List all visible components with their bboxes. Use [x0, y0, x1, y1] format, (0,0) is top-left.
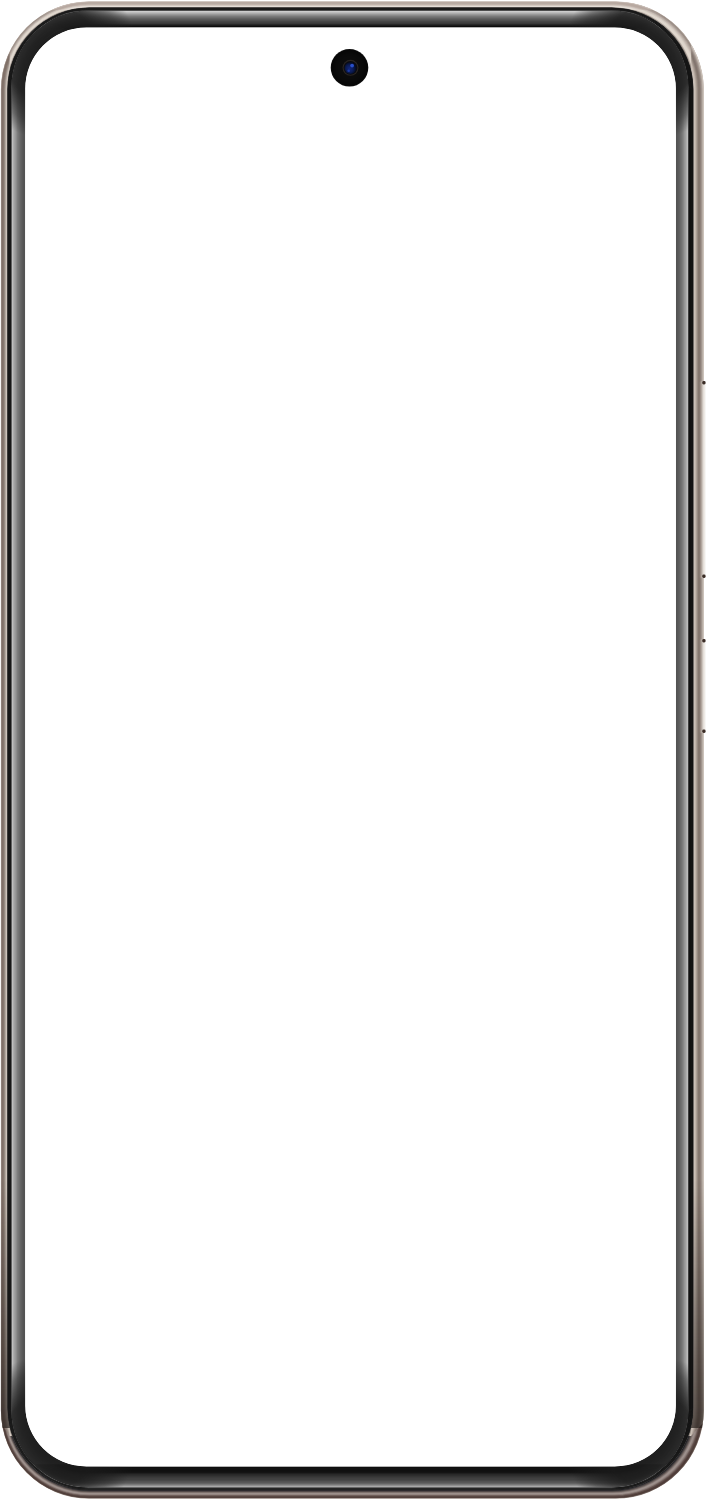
- button[interactable]: Screen: [25, 28, 681, 1466]
- button[interactable]: Power: [697, 639, 706, 733]
- button[interactable]: Volume: [697, 381, 706, 578]
